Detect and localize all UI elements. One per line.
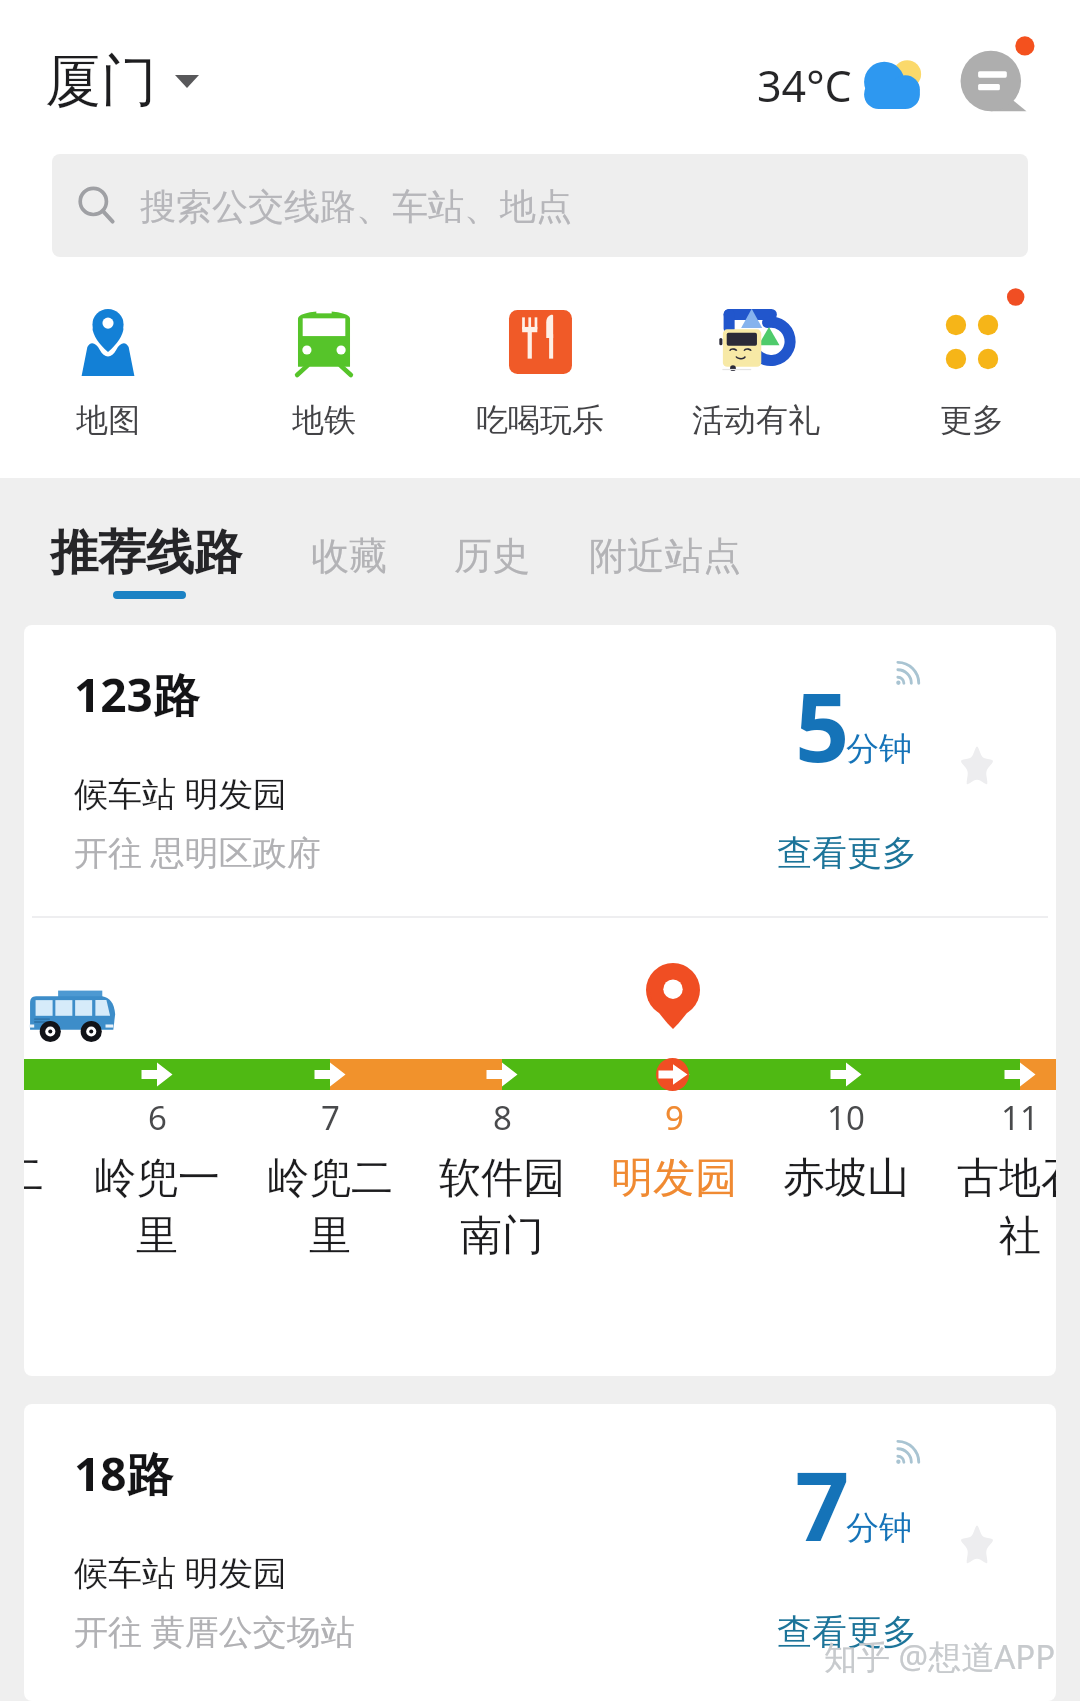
- staticText: 9: [665, 1095, 684, 1140]
- button[interactable]: 活动有礼: [648, 290, 864, 440]
- staticText: 历史: [454, 532, 530, 580]
- staticText: 18路: [74, 1442, 173, 1505]
- staticText: 古地石社: [952, 1152, 1056, 1263]
- button[interactable]: 推荐线路: [36, 515, 256, 591]
- staticText: 开往 黄厝公交场站: [74, 1608, 355, 1654]
- staticText: 分钟: [846, 1507, 912, 1549]
- staticText: 查看更多: [777, 831, 917, 875]
- button[interactable]: Messages: [950, 32, 1046, 128]
- button[interactable]: 查看更多: [764, 1598, 930, 1666]
- staticText: 8: [493, 1095, 512, 1140]
- staticText: 候车站 明发园: [74, 770, 287, 816]
- staticText: 赤坡山: [778, 1152, 914, 1205]
- button[interactable]: 18路: [24, 1404, 1056, 1701]
- staticText: 7: [795, 1439, 850, 1568]
- staticText: 岭兜二里: [262, 1152, 398, 1263]
- button[interactable]: 查看更多: [764, 819, 930, 887]
- staticText: 10: [827, 1095, 865, 1140]
- staticText: 34°C: [757, 56, 852, 115]
- staticText: 11: [1001, 1095, 1039, 1140]
- staticText: 7: [321, 1095, 340, 1140]
- button[interactable]: 搜索公交线路、车站、地点: [52, 154, 1028, 257]
- button[interactable]: 吃喝玩乐: [432, 290, 648, 440]
- button[interactable]: Favourite: [935, 1502, 1019, 1586]
- staticText: 分钟: [846, 728, 912, 770]
- staticText: 岭兜一里: [89, 1152, 225, 1263]
- staticText: 5: [795, 660, 850, 789]
- staticText: 明发园: [606, 1152, 742, 1205]
- staticText: 更多: [940, 400, 1004, 440]
- staticText: 附近站点: [589, 532, 741, 580]
- staticText: 知乎 @想道APP: [824, 1634, 1056, 1679]
- staticText: 地铁: [292, 400, 356, 440]
- button[interactable]: 附近站点: [577, 520, 753, 592]
- staticText: 123路: [74, 663, 199, 726]
- button[interactable]: 地图: [0, 290, 216, 440]
- staticText: 搜索公交线路、车站、地点: [140, 184, 572, 229]
- staticText: 开往 思明区政府: [74, 829, 321, 875]
- button[interactable]: 历史: [442, 520, 542, 592]
- staticText: 厦门: [45, 46, 157, 117]
- staticText: 活动有礼: [692, 400, 820, 440]
- staticText: 候车站 明发园: [74, 1549, 287, 1595]
- button[interactable]: 厦门: [33, 36, 211, 127]
- staticText: 二: [24, 1149, 44, 1202]
- staticText: 收藏: [311, 532, 387, 580]
- button[interactable]: 地铁: [216, 290, 432, 440]
- button[interactable]: 收藏: [299, 520, 399, 592]
- staticText: 地图: [76, 400, 140, 440]
- button[interactable]: Favourite: [935, 723, 1019, 807]
- staticText: 查看更多: [777, 1610, 917, 1654]
- staticText: 软件园南门: [434, 1152, 570, 1263]
- staticText: 吃喝玩乐: [476, 400, 604, 440]
- staticText: 6: [148, 1095, 167, 1140]
- button[interactable]: 123路: [24, 625, 1056, 1376]
- button[interactable]: 更多: [864, 290, 1080, 440]
- staticText: 推荐线路: [50, 523, 242, 583]
